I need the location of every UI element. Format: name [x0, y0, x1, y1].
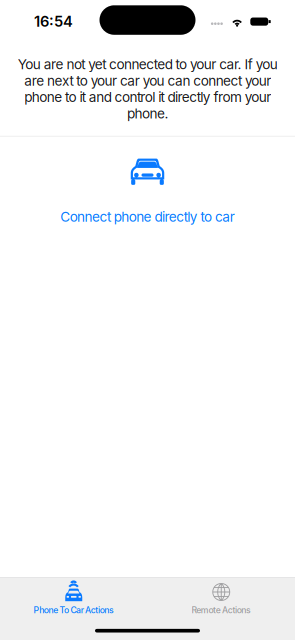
- staticText: Phone To Car Actions: [34, 605, 114, 615]
- staticText: 16:54: [34, 13, 73, 30]
- staticText: You are not yet connected to your car. I…: [18, 56, 277, 122]
- staticText: Remote Actions: [191, 605, 251, 615]
- button[interactable]: Phone To Car Actions: [0, 577, 147, 619]
- staticText: Connect phone directly to car: [60, 209, 235, 225]
- button[interactable]: Connect phone directly to car: [48, 185, 247, 235]
- button[interactable]: Remote Actions: [147, 577, 295, 619]
